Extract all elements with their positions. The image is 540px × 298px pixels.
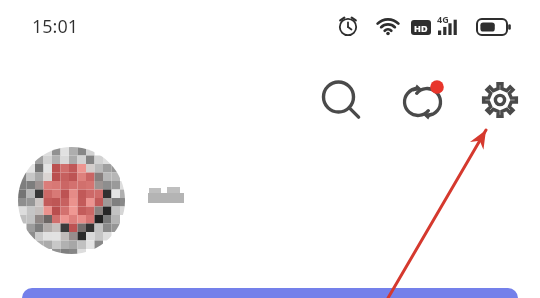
button[interactable]: [22, 288, 518, 298]
staticText: 15:01: [32, 14, 79, 39]
button[interactable]: Profile photo: [18, 147, 125, 254]
button[interactable]: Search: [318, 77, 364, 123]
staticText: 4G: [437, 13, 449, 25]
staticText: HD: [414, 22, 428, 34]
button[interactable]: Sync: [398, 77, 444, 123]
button[interactable]: Settings: [477, 77, 523, 123]
